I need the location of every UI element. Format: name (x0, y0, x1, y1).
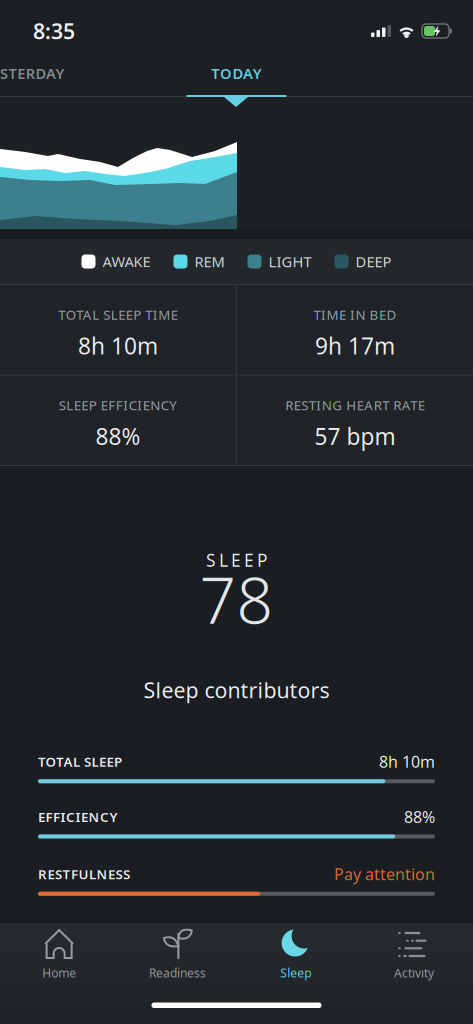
staticText: AWAKE (102, 252, 150, 271)
button[interactable]: Activity (355, 929, 473, 981)
staticText: 57 bpm (314, 421, 395, 451)
staticText: 88% (404, 806, 435, 827)
staticText: Home (42, 965, 76, 981)
staticText: 8h 10m (78, 331, 158, 361)
staticText: TOTAL SLEEP (38, 753, 122, 770)
staticText: STERDAY (0, 63, 65, 83)
staticText: RESTFULNESS (38, 865, 130, 883)
staticText: TOTAL SLEEP TIME (58, 306, 178, 323)
staticText: Activity (394, 965, 434, 981)
staticText: 9h 17m (315, 331, 395, 361)
staticText: 8:35 (33, 17, 75, 45)
staticText: RESTING HEART RATE (285, 396, 425, 414)
staticText: 78 (199, 556, 273, 641)
staticText: 88% (95, 421, 140, 451)
button[interactable]: TODAY (211, 63, 262, 97)
button[interactable]: Sleep (236, 929, 355, 981)
button[interactable]: Home (0, 929, 118, 981)
staticText: Pay attention (334, 863, 435, 885)
staticText: DEEP (355, 252, 391, 271)
staticText: TODAY (211, 63, 262, 83)
staticText: S L E E P (206, 548, 267, 571)
staticText: 8h 10m (379, 751, 435, 772)
staticText: SLEEP EFFICIENCY (59, 396, 177, 414)
button[interactable]: Readiness (118, 929, 236, 981)
staticText: Sleep contributors (143, 676, 329, 704)
staticText: Sleep (280, 965, 311, 981)
staticText: REM (194, 252, 224, 271)
staticText: LIGHT (268, 252, 311, 271)
staticText: TIME IN BED (313, 306, 396, 323)
staticText: Readiness (149, 965, 206, 981)
staticText: EFFICIENCY (38, 808, 117, 826)
button[interactable]: STERDAY (0, 63, 65, 97)
